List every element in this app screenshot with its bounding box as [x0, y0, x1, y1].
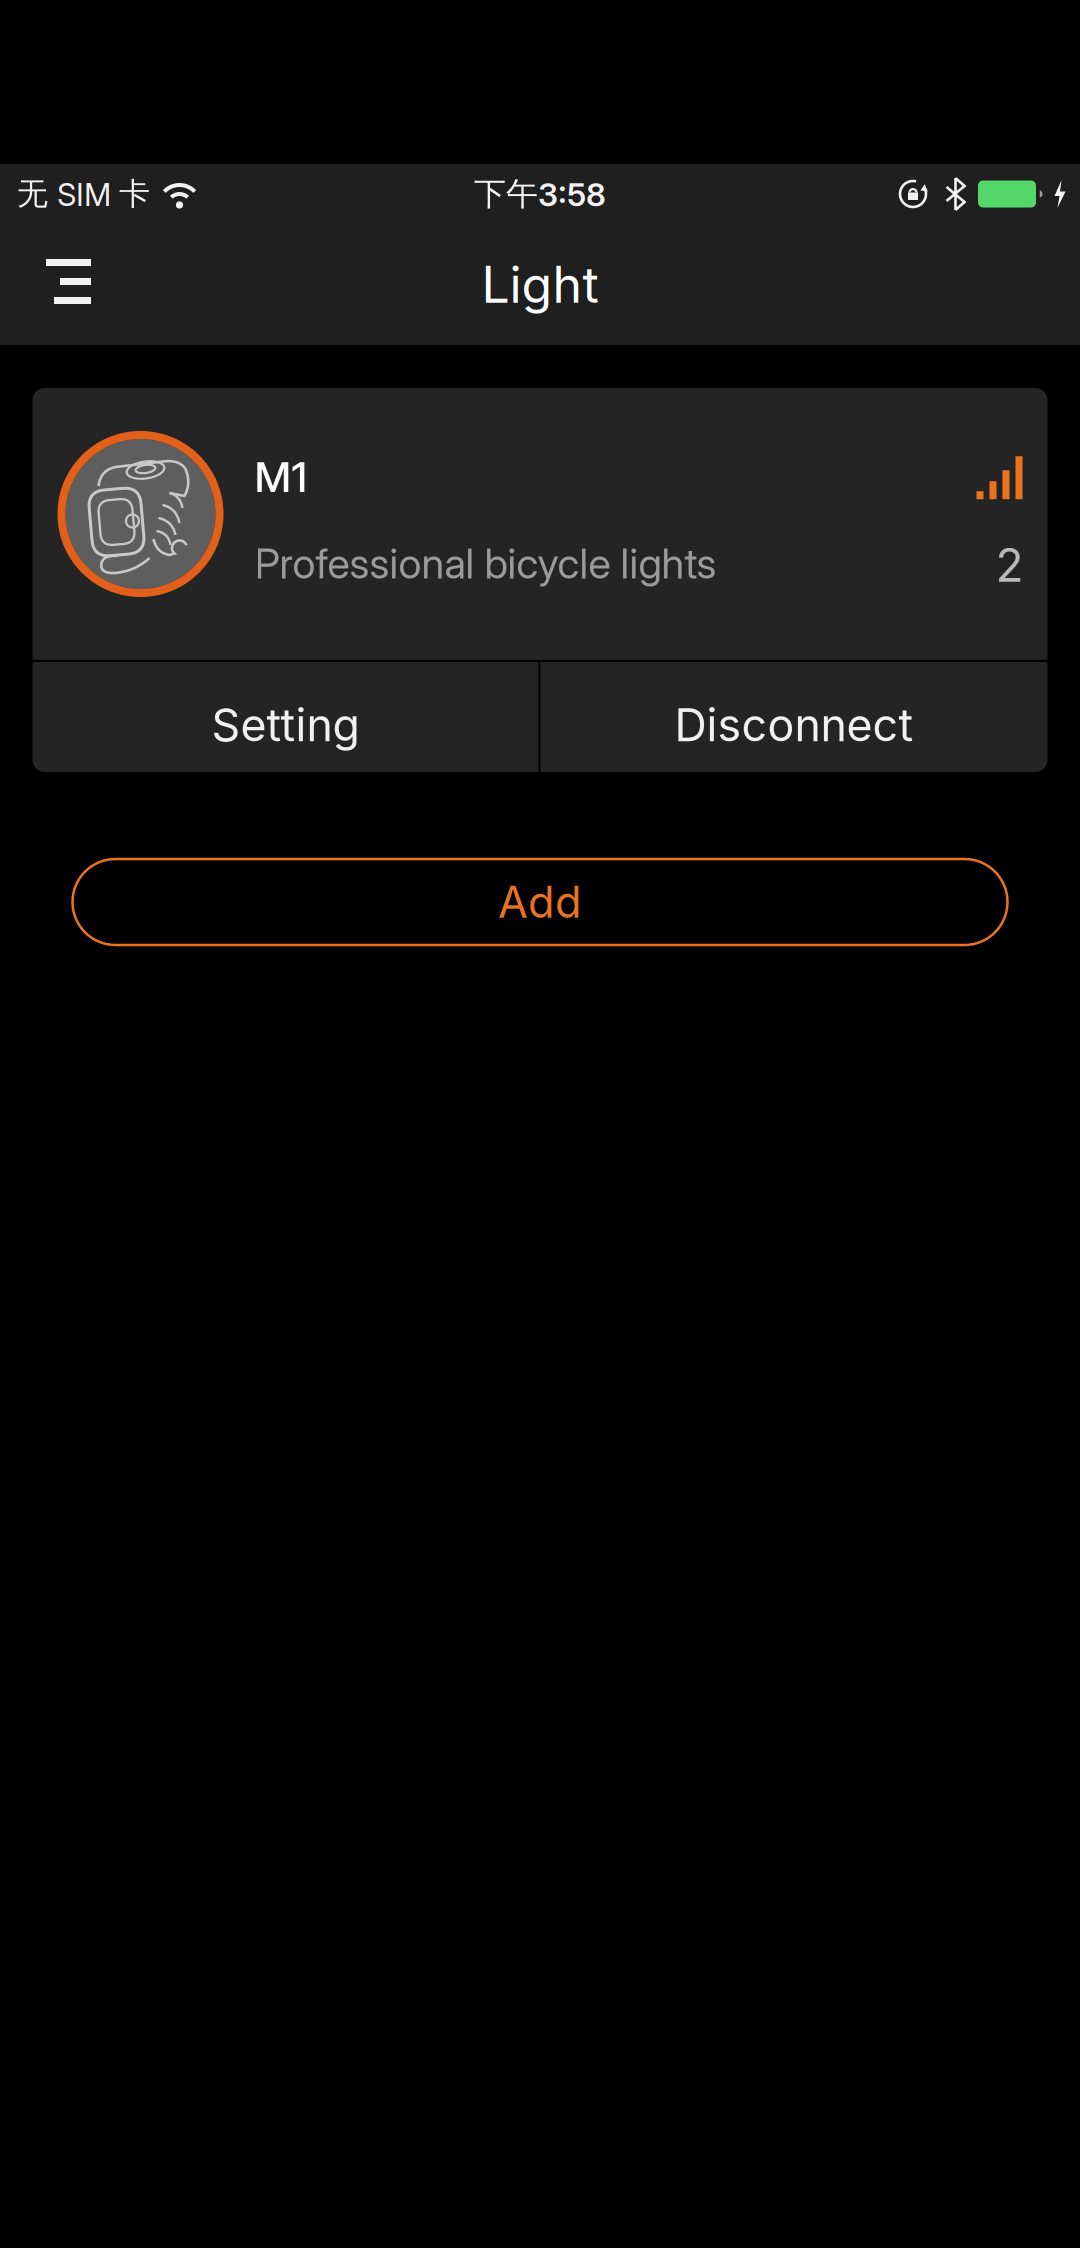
staticText: 2 [995, 537, 1023, 593]
button[interactable]: Disconnect [540, 662, 1047, 772]
button[interactable]: Setting [32, 662, 538, 772]
staticText: Setting [211, 698, 359, 752]
staticText: Add [498, 876, 582, 928]
button[interactable]: Add [72, 859, 1007, 945]
staticText: 下午3:58 [474, 174, 606, 214]
staticText: Professional bicycle lights [254, 538, 716, 588]
staticText: Light [481, 254, 598, 315]
staticText: 无 SIM 卡 [17, 174, 150, 214]
button[interactable]: Menu [0, 262, 121, 307]
staticText: M1 [254, 452, 307, 502]
staticText: Disconnect [674, 698, 913, 752]
